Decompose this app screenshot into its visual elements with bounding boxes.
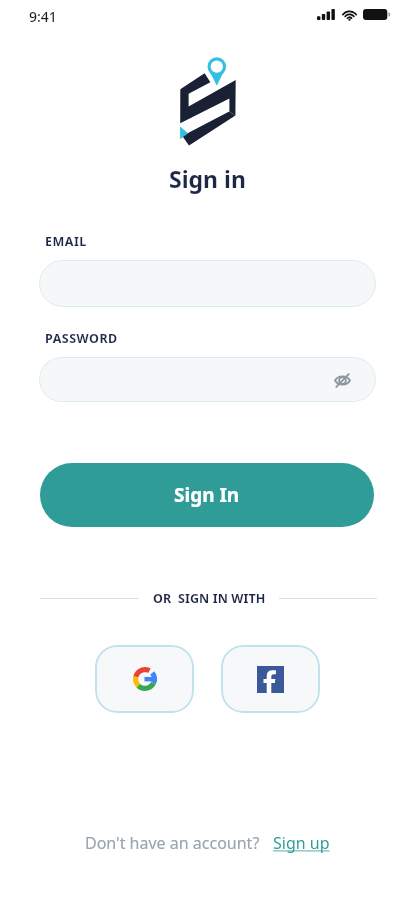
button[interactable]: Sign In	[40, 463, 374, 527]
button[interactable]: Show password	[330, 368, 354, 392]
staticText: Sign In	[174, 482, 240, 508]
staticText: 9:41	[29, 7, 57, 26]
button[interactable]: Sign in with Facebook	[221, 645, 320, 713]
staticText: Don't have an account?	[85, 832, 260, 854]
button[interactable]: Sign up	[273, 832, 330, 854]
staticText: PASSWORD	[45, 330, 118, 347]
staticText: EMAIL	[45, 233, 87, 250]
button[interactable]: Sign in with Google	[95, 645, 194, 713]
staticText: Sign up	[273, 832, 330, 854]
button[interactable]: Show password	[39, 357, 376, 402]
staticText: OR SIGN IN WITH	[153, 590, 266, 606]
button[interactable]	[39, 260, 376, 307]
staticText: Sign in	[169, 163, 246, 194]
